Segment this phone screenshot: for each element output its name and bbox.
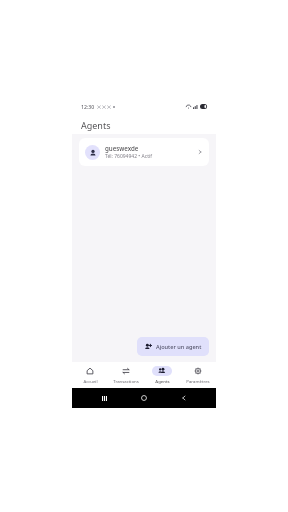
staticText: gueswexde (105, 144, 139, 152)
button[interactable]: Paramètres (180, 362, 216, 388)
staticText: Paramètres (186, 378, 210, 384)
staticText: Agents (81, 119, 111, 131)
button[interactable]: Agents (144, 362, 180, 388)
button[interactable]: Recent apps (96, 390, 112, 406)
button[interactable]: Transactions (108, 362, 144, 388)
button[interactable]: Accueil (72, 362, 108, 388)
staticText: Transactions (113, 378, 139, 384)
staticText: Agents (155, 378, 170, 384)
staticText: Ajouter un agent (156, 343, 202, 351)
button[interactable]: gueswexde (79, 138, 209, 166)
button[interactable]: Back (176, 390, 192, 406)
staticText: Accueil (83, 378, 98, 384)
button[interactable]: Ajouter un agent (137, 337, 209, 356)
staticText: 12:30 (81, 103, 95, 110)
button[interactable]: Home (136, 390, 152, 406)
staticText: Tél: 76094942 • Actif (105, 153, 152, 160)
